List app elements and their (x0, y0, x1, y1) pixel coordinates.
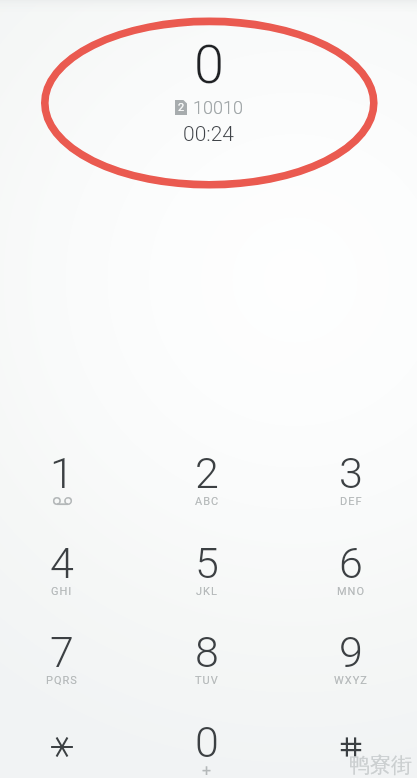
staticText: 10010 (193, 97, 243, 118)
staticText: 1 (50, 448, 74, 498)
staticText: 0 (194, 33, 224, 96)
staticText: 7 (50, 627, 74, 677)
other: Voicemail (52, 497, 73, 505)
button[interactable]: Star key (0, 698, 128, 778)
staticText: ABC (195, 495, 220, 508)
staticText: JKL (196, 585, 218, 598)
button[interactable]: Pound key (285, 698, 417, 778)
staticText: 3 (339, 448, 363, 498)
button[interactable]: 0 (141, 698, 273, 778)
staticText: 4 (50, 538, 74, 588)
staticText: MNO (337, 585, 366, 598)
button[interactable]: 6 (285, 519, 417, 609)
staticText: PQRS (46, 674, 78, 687)
staticText: + (202, 761, 212, 778)
staticText: GHI (51, 585, 73, 598)
staticText: 2 (178, 101, 185, 114)
staticText: 00:24 (183, 122, 235, 147)
button[interactable]: 9 (285, 608, 417, 698)
staticText: 6 (339, 538, 363, 588)
button[interactable]: 3 (285, 429, 417, 519)
button[interactable]: 7 (0, 608, 128, 698)
button[interactable]: 8 (141, 608, 273, 698)
button[interactable]: 1 (0, 429, 128, 519)
staticText: DEF (340, 495, 363, 508)
staticText: 鸭寮街 (349, 752, 412, 778)
staticText: 0 (195, 717, 219, 767)
staticText: TUV (195, 674, 219, 687)
staticText: 5 (195, 538, 219, 588)
staticText: 8 (195, 627, 219, 677)
button[interactable]: 5 (141, 519, 273, 609)
staticText: 2 (195, 448, 219, 498)
button[interactable]: 4 (0, 519, 128, 609)
staticText: WXYZ (334, 674, 368, 687)
button[interactable]: 2 (141, 429, 273, 519)
staticText: 9 (339, 627, 363, 677)
